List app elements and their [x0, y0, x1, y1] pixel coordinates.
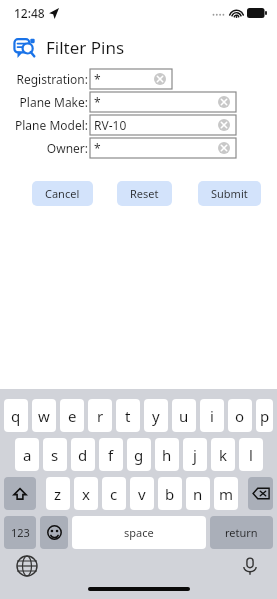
- staticText: s: [51, 445, 59, 465]
- staticText: Plane Make:: [19, 94, 88, 110]
- button[interactable]: k: [211, 438, 235, 471]
- button[interactable]: Cancel: [32, 181, 93, 206]
- staticText: Owner:: [46, 140, 88, 156]
- staticText: return: [225, 525, 258, 540]
- button[interactable]: Dictation: [239, 555, 261, 577]
- button[interactable]: Change keyboard language: [16, 555, 38, 577]
- button[interactable]: Backspace: [248, 477, 273, 510]
- button[interactable]: Clear: [218, 142, 230, 154]
- button[interactable]: Clear: [154, 73, 166, 85]
- staticText: 123: [11, 525, 30, 540]
- button[interactable]: x: [74, 477, 98, 510]
- staticText: k: [219, 445, 228, 465]
- button[interactable]: RV-10: [90, 115, 236, 135]
- button[interactable]: z: [46, 477, 70, 510]
- button[interactable]: u: [172, 399, 196, 432]
- button[interactable]: g: [127, 438, 151, 471]
- button[interactable]: Clear: [218, 119, 230, 131]
- staticText: *: [94, 140, 101, 156]
- staticText: *: [94, 94, 101, 110]
- button[interactable]: Submit: [198, 181, 261, 206]
- button[interactable]: b: [158, 477, 182, 510]
- button[interactable]: y: [144, 399, 168, 432]
- button[interactable]: n: [186, 477, 210, 510]
- button[interactable]: e: [60, 399, 84, 432]
- button[interactable]: q: [4, 399, 28, 432]
- staticText: a: [23, 445, 32, 465]
- button[interactable]: m: [214, 477, 238, 510]
- button[interactable]: return: [210, 516, 273, 549]
- staticText: q: [11, 406, 21, 426]
- button[interactable]: c: [102, 477, 126, 510]
- staticText: i: [210, 406, 214, 426]
- button[interactable]: r: [88, 399, 112, 432]
- button[interactable]: l: [239, 438, 263, 471]
- staticText: u: [179, 406, 189, 426]
- button[interactable]: *: [90, 138, 236, 158]
- button[interactable]: space: [72, 516, 206, 549]
- button[interactable]: Clear: [218, 96, 230, 108]
- staticText: v: [138, 484, 146, 504]
- button[interactable]: i: [200, 399, 224, 432]
- button[interactable]: a: [15, 438, 39, 471]
- staticText: t: [125, 406, 131, 426]
- staticText: e: [68, 406, 77, 426]
- button[interactable]: *: [90, 92, 236, 112]
- staticText: Plane Model:: [15, 117, 88, 133]
- button[interactable]: *: [90, 69, 172, 89]
- staticText: *: [94, 71, 101, 87]
- staticText: w: [38, 406, 50, 426]
- staticText: j: [193, 445, 197, 465]
- button[interactable]: d: [71, 438, 95, 471]
- staticText: z: [54, 484, 62, 504]
- staticText: c: [110, 484, 118, 504]
- button[interactable]: Reset: [117, 181, 172, 206]
- button[interactable]: w: [32, 399, 56, 432]
- button[interactable]: f: [99, 438, 123, 471]
- staticText: m: [219, 484, 234, 504]
- staticText: x: [82, 484, 90, 504]
- staticText: r: [97, 406, 104, 426]
- staticText: y: [152, 406, 160, 426]
- button[interactable]: Emoji: [40, 516, 68, 549]
- staticText: d: [78, 445, 88, 465]
- staticText: Filter Pins: [46, 36, 125, 59]
- staticText: l: [249, 445, 253, 465]
- staticText: n: [193, 484, 203, 504]
- staticText: f: [108, 445, 114, 465]
- staticText: Reset: [130, 186, 159, 201]
- button[interactable]: t: [116, 399, 140, 432]
- button[interactable]: o: [228, 399, 252, 432]
- button[interactable]: v: [130, 477, 154, 510]
- staticText: RV-10: [94, 117, 127, 133]
- button[interactable]: h: [155, 438, 179, 471]
- staticText: b: [165, 484, 175, 504]
- staticText: Cancel: [45, 186, 80, 201]
- button[interactable]: Numbers: [4, 516, 36, 549]
- staticText: g: [134, 445, 144, 465]
- staticText: Submit: [211, 186, 248, 201]
- staticText: p: [260, 406, 270, 426]
- staticText: h: [162, 445, 172, 465]
- staticText: Registration:: [16, 71, 88, 87]
- button[interactable]: s: [43, 438, 67, 471]
- button[interactable]: Shift: [4, 477, 36, 510]
- button[interactable]: j: [183, 438, 207, 471]
- staticText: o: [235, 406, 245, 426]
- staticText: space: [124, 525, 154, 540]
- button[interactable]: p: [256, 399, 273, 432]
- staticText: 12:48: [14, 5, 45, 21]
